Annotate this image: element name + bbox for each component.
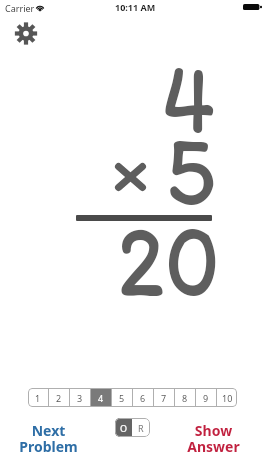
staticText: 7 <box>161 392 167 404</box>
staticText: 8 <box>182 392 188 404</box>
staticText: Next Problem <box>19 421 78 456</box>
staticText: 4 <box>152 37 215 158</box>
staticText: 6 <box>140 392 146 404</box>
staticText: O <box>120 422 128 434</box>
button[interactable]: 6 <box>133 388 153 407</box>
button[interactable]: 10 <box>217 388 237 407</box>
button[interactable]: Next Problem <box>8 421 88 456</box>
button[interactable]: 9 <box>196 388 216 407</box>
staticText: Show Answer <box>187 421 240 456</box>
staticText: 5 <box>147 109 216 230</box>
button[interactable]: O <box>115 418 132 437</box>
staticText: 4 <box>98 392 104 404</box>
button[interactable]: 8 <box>175 388 195 407</box>
staticText: 1 <box>35 392 41 404</box>
button[interactable]: Settings <box>7 15 45 51</box>
staticText: 20 <box>108 194 220 322</box>
button[interactable]: R <box>132 418 150 437</box>
button[interactable]: Show Answer <box>173 421 253 456</box>
staticText: Carrier <box>5 2 35 14</box>
button[interactable]: 3 <box>70 388 90 407</box>
staticText: 10:11 AM <box>115 1 156 13</box>
staticText: 2 <box>56 392 62 404</box>
staticText: 9 <box>203 392 209 404</box>
button[interactable]: 5 <box>112 388 132 407</box>
staticText: 5 <box>119 392 125 404</box>
staticText: 3 <box>77 392 83 404</box>
staticText: R <box>138 422 144 434</box>
staticText: 10 <box>222 392 233 404</box>
button[interactable]: 7 <box>154 388 174 407</box>
button[interactable]: 1 <box>28 388 48 407</box>
button[interactable]: 4 <box>91 388 111 407</box>
button[interactable]: 2 <box>49 388 69 407</box>
